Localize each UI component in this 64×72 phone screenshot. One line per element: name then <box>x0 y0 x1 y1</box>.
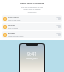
button[interactable]: Sounds <box>2 23 62 30</box>
staticText: Show unread count <box>8 35 24 37</box>
staticText: Sounds <box>8 24 16 27</box>
staticText: Never miss a message <box>0 2 64 5</box>
staticText: Push alerts <box>8 16 19 19</box>
button[interactable]: Badges <box>2 31 62 38</box>
button[interactable]: Push alerts <box>2 15 62 22</box>
staticText: Badges <box>8 32 16 35</box>
button[interactable]: Toggle <box>56 17 61 20</box>
button[interactable]: Toggle <box>56 33 61 36</box>
button[interactable]: Toggle <box>56 25 61 28</box>
staticText: 9:41 <box>27 50 38 57</box>
staticText: Turn on notifications so you never miss … <box>0 6 64 10</box>
staticText: Monday, June 3 <box>26 57 38 59</box>
staticText: Stay in the loop <box>8 19 21 21</box>
staticText: Play a chime <box>8 27 18 29</box>
button[interactable]: Learn more <box>0 11 64 13</box>
